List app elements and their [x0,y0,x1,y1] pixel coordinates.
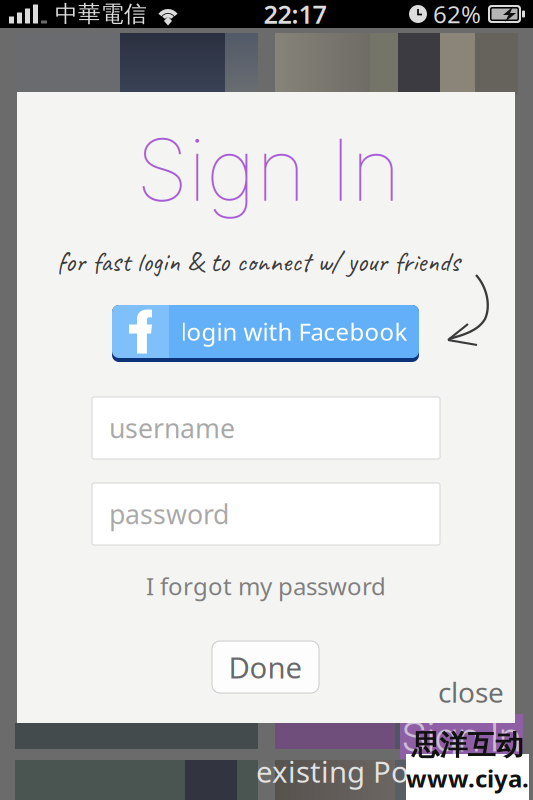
staticText: username [109,410,235,446]
button[interactable]: I forgot my password [136,569,396,603]
button[interactable]: login with Facebook [112,305,419,362]
staticText: 62% [433,0,481,30]
button[interactable]: close [435,675,507,709]
staticText: login with Facebook [180,316,407,347]
button[interactable]: Done [212,641,319,693]
staticText: existing Pose [256,752,440,791]
staticText: I forgot my password [146,570,386,602]
staticText: password [109,496,229,532]
button[interactable]: username [92,397,440,459]
staticText: Done [228,647,302,686]
staticText: 中華電信 [55,0,147,28]
staticText: www.ciya.cn [406,762,529,800]
staticText: 22:17 [263,0,326,31]
staticText: close [438,673,504,711]
staticText: 思洋互动 [411,728,523,762]
staticText: Sign In [136,118,401,221]
staticText: for fast login & to connect w/ your frie… [57,244,460,279]
staticText: Sign In [402,711,521,761]
button[interactable]: password [92,483,440,545]
